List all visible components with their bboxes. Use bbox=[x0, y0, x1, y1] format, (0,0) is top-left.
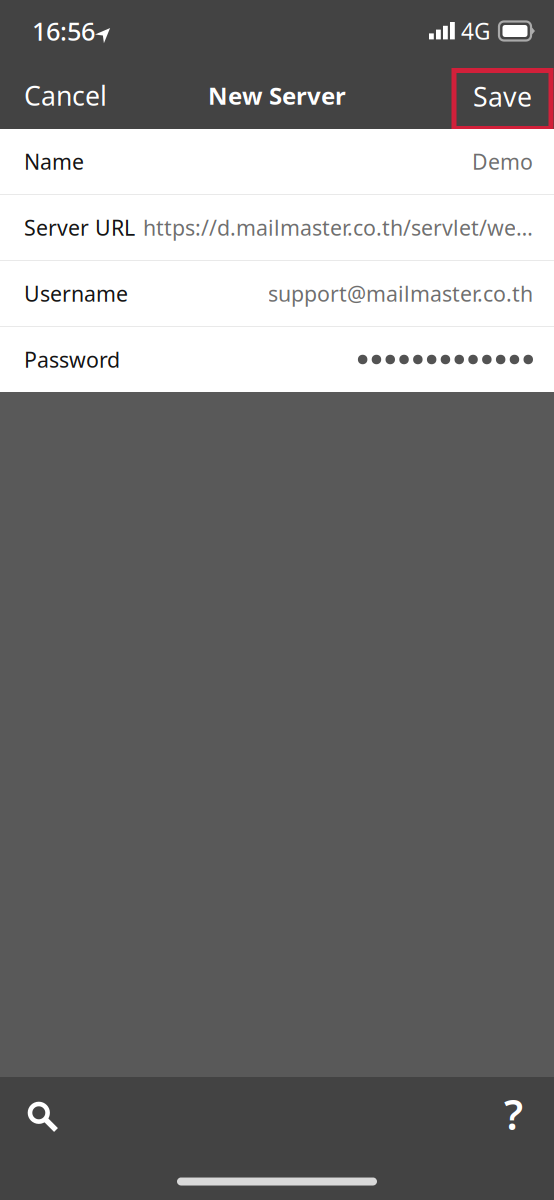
staticText: Cancel bbox=[24, 78, 107, 113]
staticText: Password bbox=[24, 345, 120, 374]
staticText: Server URL bbox=[24, 213, 135, 242]
staticText: Save bbox=[473, 79, 532, 114]
button[interactable]: Search bbox=[0, 1085, 82, 1146]
staticText: New Server bbox=[208, 80, 346, 111]
button[interactable]: Cancel bbox=[0, 64, 129, 126]
staticText: Demo bbox=[472, 147, 533, 176]
button[interactable]: Save bbox=[454, 66, 551, 124]
staticText: 16:56 bbox=[32, 14, 95, 48]
staticText: Name bbox=[24, 147, 84, 176]
staticText: Username bbox=[24, 279, 128, 308]
staticText: support@mailmaster.co.th bbox=[268, 279, 533, 308]
staticText: 4G bbox=[461, 16, 491, 46]
button[interactable]: Help bbox=[476, 1079, 554, 1152]
staticText: https://d.mailmaster.co.th/servlet/webd… bbox=[143, 213, 533, 242]
staticText: ? bbox=[504, 1087, 523, 1141]
